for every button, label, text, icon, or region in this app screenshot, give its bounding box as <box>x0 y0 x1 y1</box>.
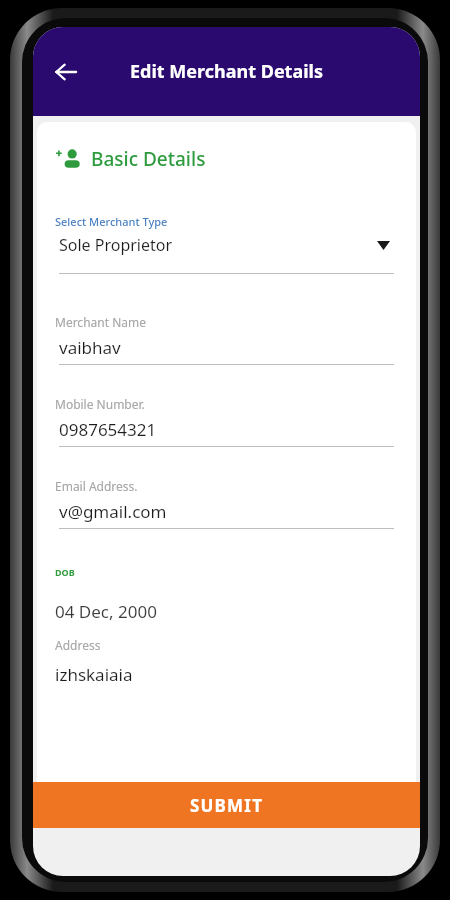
staticText: Email Address. <box>55 478 138 494</box>
staticText: SUBMIT <box>190 794 264 817</box>
staticText: 0987654321 <box>59 418 157 441</box>
staticText: izhskaiaia <box>55 663 133 686</box>
staticText: Mobile Number. <box>55 396 145 412</box>
staticText: Sole Proprietor <box>59 234 377 256</box>
button[interactable]: Email Address. <box>55 478 394 529</box>
staticText: Edit Merchant Details <box>33 59 420 84</box>
staticText: 04 Dec, 2000 <box>55 600 157 623</box>
staticText: v@gmail.com <box>59 500 167 523</box>
staticText: Select Merchant Type <box>55 214 168 229</box>
button[interactable]: Back <box>43 49 89 95</box>
staticText: DOB <box>55 566 75 578</box>
button[interactable]: Select Merchant Type <box>55 214 394 274</box>
staticText: Basic Details <box>91 146 206 172</box>
staticText: vaibhav <box>59 336 121 359</box>
staticText: Address <box>55 637 101 653</box>
button[interactable]: SUBMIT <box>33 782 420 828</box>
button[interactable]: Merchant Name <box>55 314 394 365</box>
staticText: Merchant Name <box>55 314 146 330</box>
button[interactable]: Mobile Number. <box>55 396 394 447</box>
